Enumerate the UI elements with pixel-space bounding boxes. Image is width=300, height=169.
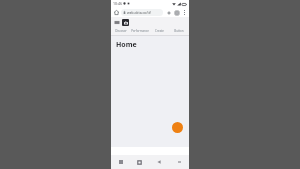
button[interactable]: Home: [130, 155, 149, 169]
button[interactable]: Button: [169, 27, 189, 35]
staticText: Home: [116, 40, 137, 50]
button[interactable]: New tab: [165, 9, 172, 16]
button[interactable]: Menu: [114, 19, 120, 25]
button[interactable]: web.okta.co/tif: [121, 9, 163, 16]
button[interactable]: Create: [149, 27, 169, 35]
staticText: Button: [174, 29, 184, 33]
button[interactable]: Compose: [172, 122, 183, 133]
button[interactable]: More options: [181, 9, 187, 15]
button[interactable]: Recent apps: [111, 155, 130, 169]
staticText: Create: [155, 29, 164, 33]
button[interactable]: Performance: [130, 27, 149, 35]
staticText: Performance: [131, 29, 149, 33]
staticText: 10:46: [113, 1, 122, 6]
button[interactable]: Home: [113, 9, 120, 16]
button[interactable]: Back: [149, 155, 169, 169]
button[interactable]: Keyboard: [169, 155, 189, 169]
button[interactable]: Switch tabs: [173, 9, 180, 16]
button[interactable]: App logo: [122, 19, 129, 26]
button[interactable]: Discover: [111, 27, 130, 35]
staticText: web.okta.co/tif: [127, 10, 151, 15]
staticText: Discover: [115, 29, 127, 33]
